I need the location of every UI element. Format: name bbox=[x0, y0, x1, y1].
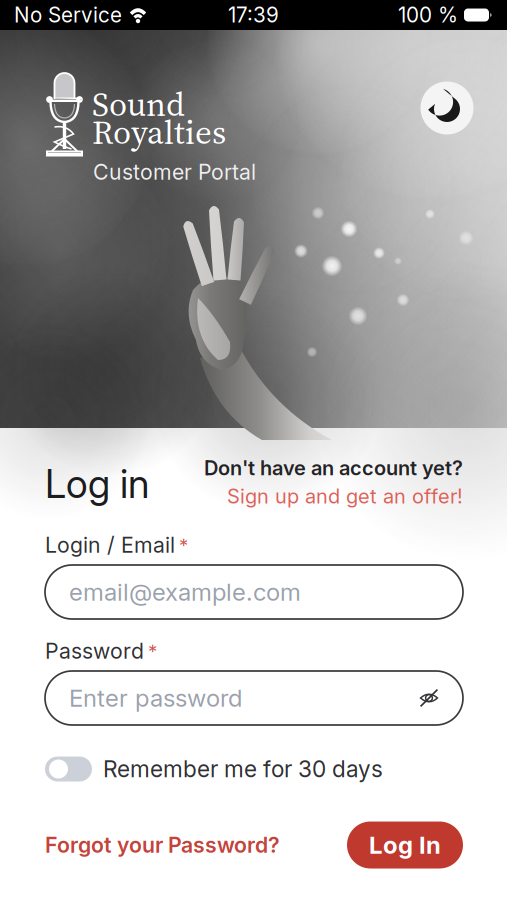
button[interactable]: Sign up and get an offer! bbox=[227, 484, 463, 508]
staticText: Log in bbox=[45, 461, 149, 507]
button[interactable]: Remember me for 30 days bbox=[45, 754, 463, 784]
button[interactable]: Forgot your Password? bbox=[45, 832, 280, 858]
staticText: 100 % bbox=[398, 2, 458, 27]
staticText: * bbox=[179, 534, 188, 556]
button[interactable]: Dark mode bbox=[420, 81, 473, 134]
staticText: * bbox=[148, 640, 157, 662]
staticText: Log In bbox=[369, 830, 441, 859]
staticText: Remember me for 30 days bbox=[103, 755, 383, 783]
staticText: Enter password bbox=[69, 683, 242, 712]
staticText: Royalties bbox=[92, 109, 226, 155]
staticText: 17:39 bbox=[228, 2, 279, 27]
staticText: Don't have an account yet? bbox=[204, 456, 463, 480]
staticText: Login / Email bbox=[45, 532, 175, 558]
staticText: Sound bbox=[92, 81, 185, 127]
staticText: Forgot your Password? bbox=[45, 832, 280, 858]
button[interactable]: Log In bbox=[347, 821, 463, 868]
staticText: Customer Portal bbox=[93, 159, 256, 185]
staticText: No Service bbox=[14, 2, 122, 27]
staticText: Sign up and get an offer! bbox=[227, 484, 463, 508]
staticText: email@example.com bbox=[69, 577, 301, 606]
staticText: Password bbox=[45, 638, 144, 664]
